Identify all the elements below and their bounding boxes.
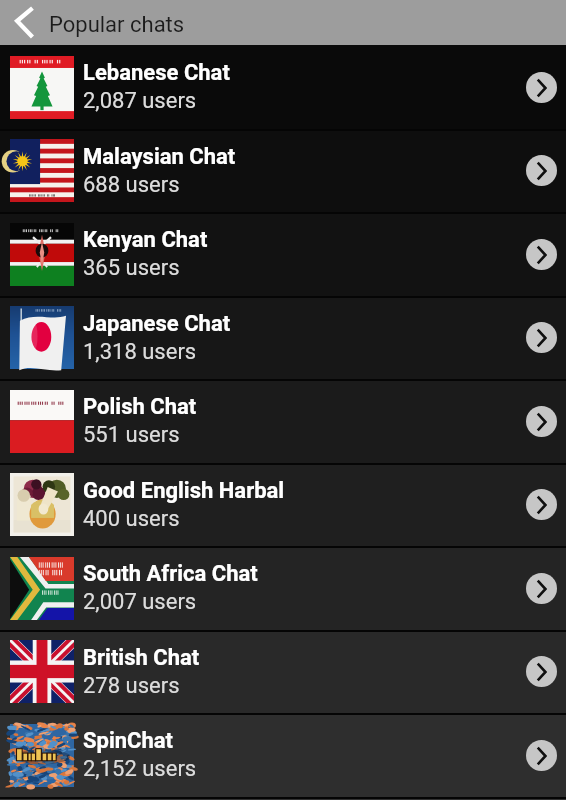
- button[interactable]: SpinChat: [0, 713, 566, 797]
- button[interactable]: Malaysian Chat: [0, 129, 566, 212]
- staticText: SpinChat: [83, 728, 174, 754]
- staticText: 1,318 users: [83, 339, 197, 365]
- button[interactable]: Open Malaysian Chat: [526, 155, 557, 186]
- button[interactable]: Lebanese Chat: [0, 45, 566, 129]
- button[interactable]: Kenyan Chat: [0, 212, 566, 296]
- staticText: Kenyan Chat: [83, 227, 208, 253]
- button[interactable]: South Africa Chat: [0, 546, 566, 630]
- button[interactable]: British Chat: [0, 630, 566, 713]
- staticText: Japanese Chat: [83, 311, 231, 337]
- staticText: 2,152 users: [83, 756, 197, 782]
- staticText: 2,007 users: [83, 589, 197, 615]
- staticText: Malaysian Chat: [83, 144, 236, 170]
- staticText: 2,087 users: [83, 88, 197, 114]
- staticText: 278 users: [83, 673, 180, 699]
- button[interactable]: Japanese Chat: [0, 296, 566, 379]
- staticText: 400 users: [83, 506, 180, 532]
- button[interactable]: Open British Chat: [526, 656, 557, 687]
- staticText: 365 users: [83, 255, 180, 281]
- staticText: Polish Chat: [83, 394, 197, 420]
- staticText: 551 users: [83, 422, 180, 448]
- staticText: Popular chats: [49, 12, 185, 38]
- button[interactable]: Open SpinChat: [526, 740, 557, 771]
- button[interactable]: Back: [0, 0, 566, 45]
- button[interactable]: Back: [0, 0, 47, 45]
- button[interactable]: Open Lebanese Chat: [526, 72, 557, 103]
- button[interactable]: Good English Harbal: [0, 463, 566, 546]
- button[interactable]: Open Japanese Chat: [526, 322, 557, 353]
- staticText: Lebanese Chat: [83, 60, 230, 86]
- staticText: Good English Harbal: [83, 478, 285, 504]
- staticText: South Africa Chat: [83, 561, 258, 587]
- staticText: British Chat: [83, 645, 200, 671]
- button[interactable]: Open South Africa Chat: [526, 573, 557, 604]
- button[interactable]: Open Kenyan Chat: [526, 239, 557, 270]
- button[interactable]: Open Polish Chat: [526, 406, 557, 437]
- staticText: 688 users: [83, 172, 180, 198]
- button[interactable]: Polish Chat: [0, 379, 566, 463]
- button[interactable]: Open Good English Harbal: [526, 489, 557, 520]
